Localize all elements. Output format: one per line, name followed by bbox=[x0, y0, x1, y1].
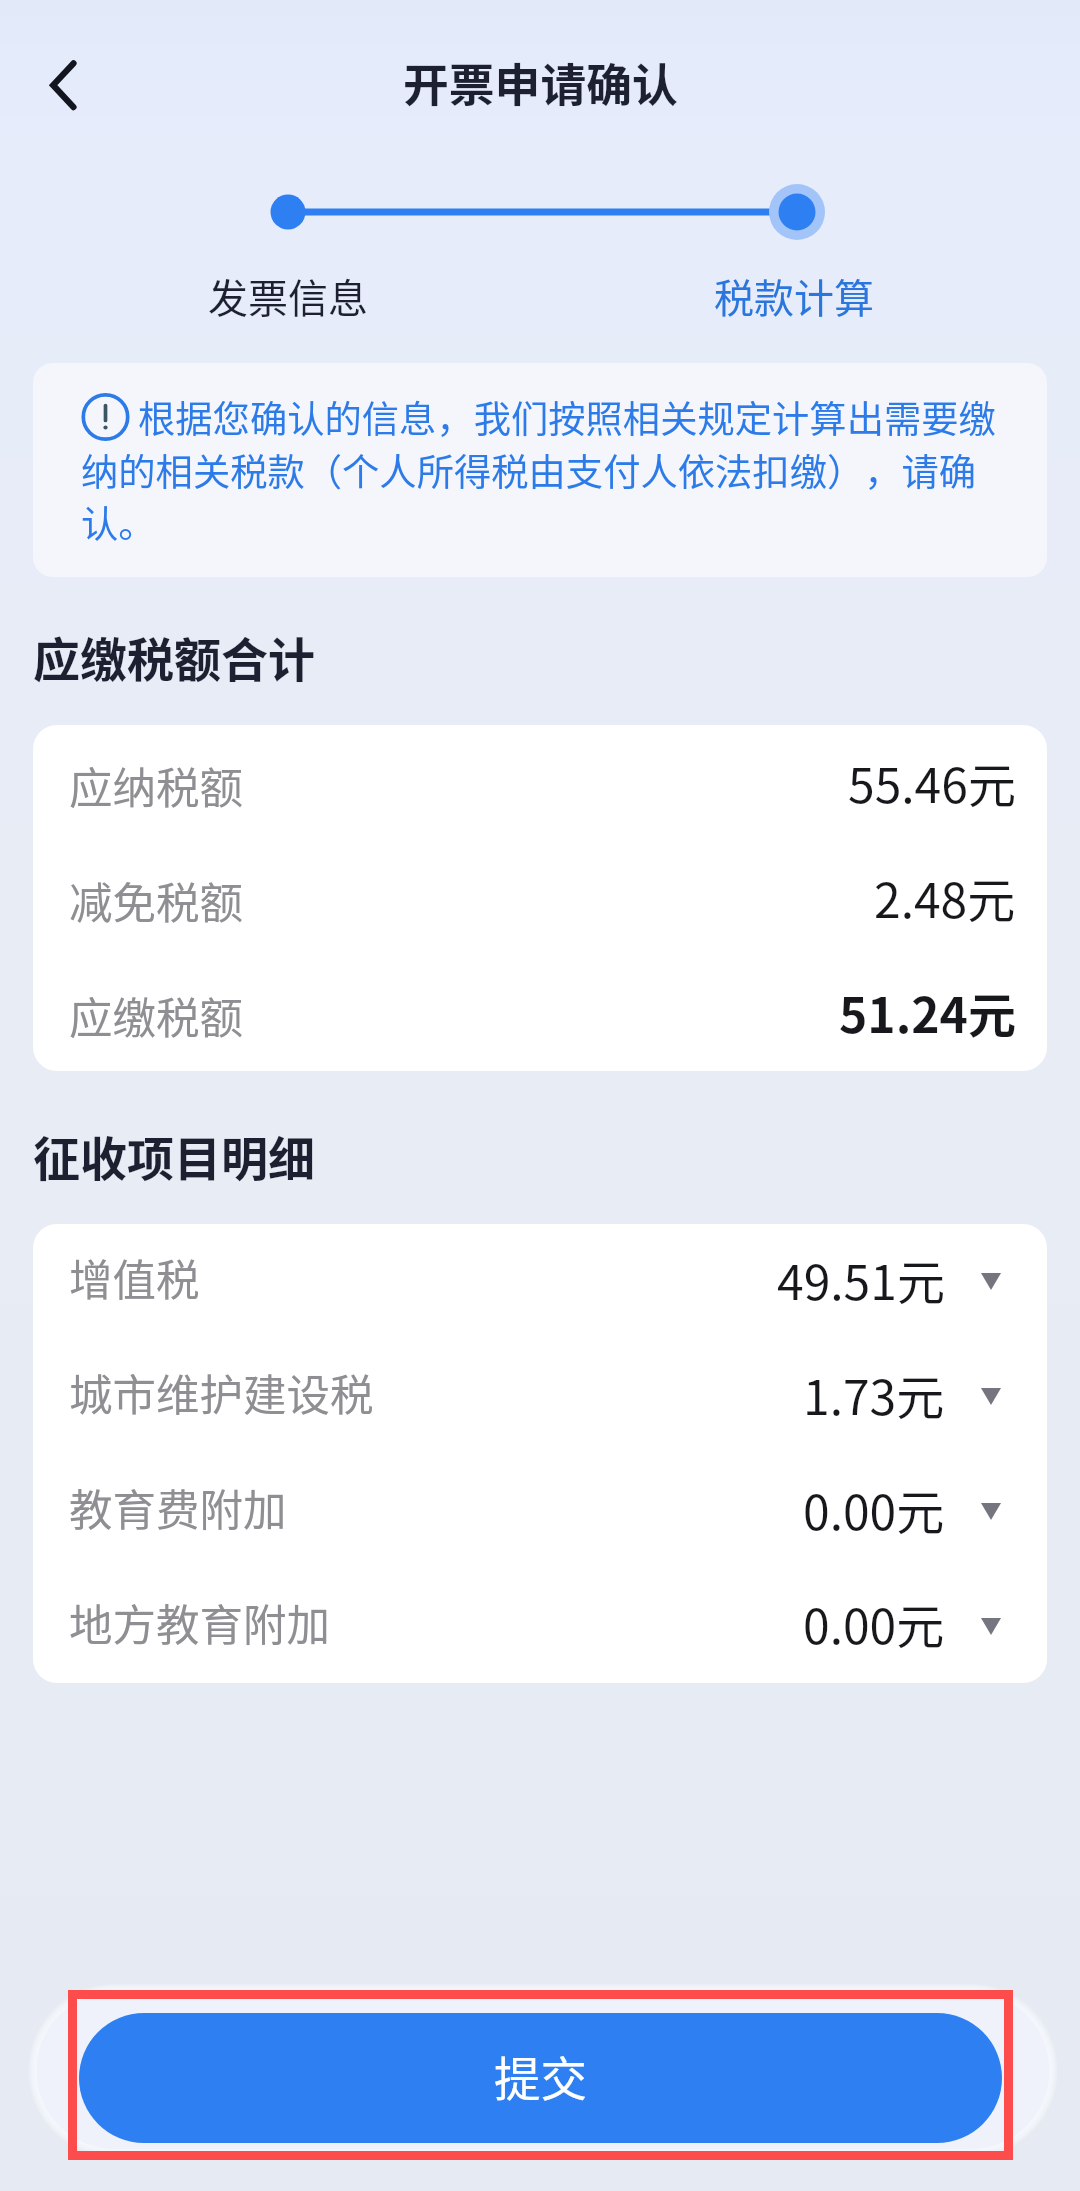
staticText: 49.51元 bbox=[777, 1244, 945, 1314]
staticText: 增值税 bbox=[69, 1246, 200, 1309]
staticText: 55.46元 bbox=[848, 747, 1016, 817]
staticText: !根据您确认的信息，我们按照相关规定计算出需要缴纳的相关税款（个人所得税由支付人… bbox=[81, 390, 1016, 548]
staticText: 减免税额 bbox=[69, 869, 243, 932]
staticText: 税款计算 bbox=[714, 267, 874, 325]
button[interactable]: 地方教育附加 bbox=[33, 1569, 1047, 1683]
staticText: 开票申请确认 bbox=[403, 49, 678, 115]
staticText: 发票信息 bbox=[208, 267, 368, 325]
staticText: 应缴税额合计 bbox=[33, 622, 315, 690]
staticText: 应缴税额 bbox=[69, 984, 243, 1047]
staticText: 地方教育附加 bbox=[69, 1591, 330, 1654]
staticText: 提交 bbox=[494, 2042, 587, 2109]
button[interactable]: 城市维护建设税 bbox=[33, 1339, 1047, 1454]
staticText: 城市维护建设税 bbox=[69, 1361, 374, 1424]
staticText: 1.73元 bbox=[803, 1359, 945, 1429]
button[interactable]: 增值税 bbox=[33, 1224, 1047, 1339]
staticText: 应纳税额 bbox=[69, 754, 243, 817]
staticText: 0.00元 bbox=[803, 1474, 945, 1544]
staticText: 0.00元 bbox=[803, 1588, 945, 1658]
button[interactable]: 教育费附加 bbox=[33, 1454, 1047, 1569]
button[interactable]: 应纳税额 bbox=[33, 725, 1047, 840]
staticText: 教育费附加 bbox=[69, 1476, 287, 1539]
staticText: 51.24元 bbox=[839, 977, 1016, 1047]
button[interactable]: 提交 bbox=[79, 2013, 1002, 2143]
staticText: 2.48元 bbox=[874, 862, 1016, 932]
button[interactable]: 应缴税额 bbox=[33, 955, 1047, 1070]
button[interactable]: Back bbox=[24, 46, 102, 124]
button[interactable]: 减免税额 bbox=[33, 840, 1047, 955]
staticText: 征收项目明细 bbox=[33, 1121, 315, 1189]
